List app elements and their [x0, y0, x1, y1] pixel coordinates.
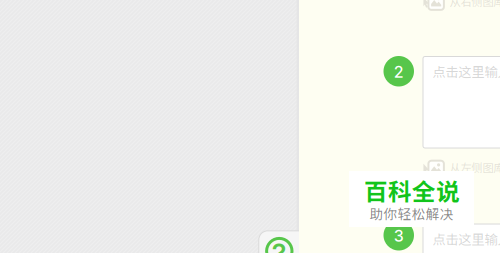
staticText: 从右侧图库选择: [450, 0, 500, 9]
button[interactable]: 3: [383, 220, 414, 250]
button[interactable]: 点击这里输入您的答案: [423, 224, 500, 253]
staticText: 3: [394, 226, 404, 246]
button[interactable]: Help: [259, 231, 311, 253]
staticText: 点击这里输入您的答案: [432, 229, 500, 248]
staticText: 从左侧图库选择: [450, 159, 500, 176]
staticText: 百科全说: [364, 173, 460, 207]
staticText: 点击这里输入您的答案: [432, 62, 500, 81]
staticText: 2: [394, 62, 404, 82]
button[interactable]: 2: [383, 56, 414, 86]
staticText: ?: [272, 238, 287, 253]
button[interactable]: 从左侧图库选择: [422, 161, 500, 177]
button[interactable]: 点击这里输入您的答案: [423, 56, 500, 148]
staticText: 助你轻松解决: [369, 203, 453, 223]
button[interactable]: 从右侧图库选择: [422, 0, 500, 10]
